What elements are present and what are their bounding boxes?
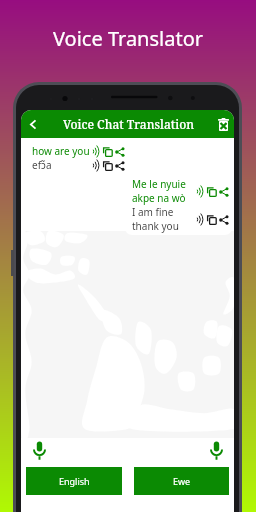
button[interactable]: Speak	[90, 145, 102, 158]
button[interactable]: Share	[218, 213, 230, 226]
button[interactable]: Speak	[194, 213, 206, 226]
button[interactable]: Speak	[90, 159, 102, 172]
button[interactable]: Share	[114, 145, 126, 158]
staticText: Me le nyuie	[132, 177, 186, 191]
button[interactable]: Copy	[102, 145, 114, 158]
button[interactable]: Back	[21, 110, 45, 138]
button[interactable]: Record English	[27, 438, 52, 463]
button[interactable]: Share	[114, 159, 126, 172]
button[interactable]: Speak	[194, 185, 206, 198]
button[interactable]: Record Ewe	[204, 438, 229, 463]
staticText: efɔ̃a	[32, 158, 52, 172]
staticText: I am fine	[132, 205, 174, 219]
button[interactable]: how are you	[25, 142, 128, 174]
staticText: Ewe	[173, 475, 191, 487]
staticText: akpe na wò	[132, 191, 186, 205]
staticText: how are you	[32, 144, 90, 158]
button[interactable]: Copy	[206, 185, 218, 198]
button[interactable]: Me le nyuie	[125, 175, 232, 235]
staticText: Voice Translator	[0, 25, 256, 52]
staticText: thank you	[132, 219, 179, 233]
button[interactable]: Ewe	[134, 467, 229, 495]
button[interactable]: Share	[218, 185, 230, 198]
button[interactable]: Copy	[206, 213, 218, 226]
staticText: English	[59, 475, 90, 487]
button[interactable]: Delete conversation	[212, 110, 234, 138]
button[interactable]: English	[26, 467, 122, 495]
staticText: Voice Chat Translation	[45, 116, 212, 132]
button[interactable]: Copy	[102, 159, 114, 172]
